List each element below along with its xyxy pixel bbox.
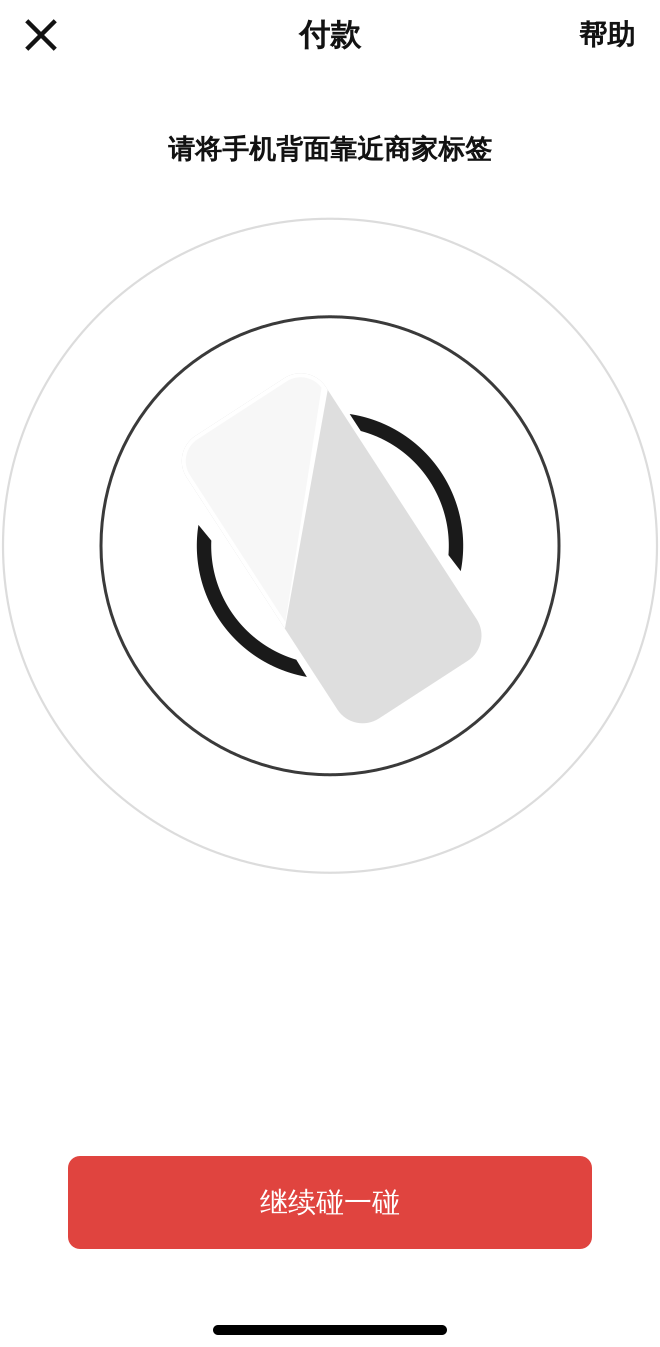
staticText: 请将手机背面靠近商家标签 (168, 133, 492, 166)
staticText: 帮助 (579, 18, 635, 52)
button[interactable]: 帮助 (579, 7, 635, 63)
staticText: 继续碰一碰 (260, 1185, 400, 1220)
button[interactable]: Close (13, 6, 69, 64)
staticText: 付款 (299, 16, 361, 54)
button[interactable]: 继续碰一碰 (68, 1156, 592, 1249)
